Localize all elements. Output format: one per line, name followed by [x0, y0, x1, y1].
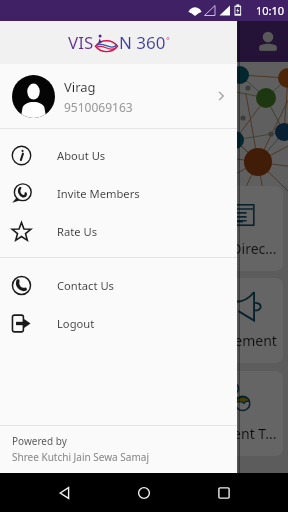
button[interactable]: Virag	[0, 64, 237, 128]
button[interactable]: Rate Us	[0, 212, 237, 250]
button[interactable]: Invite Members	[0, 174, 237, 212]
button[interactable]: Profile	[255, 29, 281, 55]
button[interactable]: Back	[50, 478, 80, 508]
staticText: N 360	[119, 31, 166, 54]
staticText: VIS	[68, 31, 94, 54]
staticText: Shree Kutchi Jain Sewa Samaj	[12, 450, 149, 464]
button[interactable]: Logout	[0, 304, 237, 342]
button[interactable]: Recents	[209, 478, 239, 508]
button[interactable]: Home	[129, 478, 159, 508]
staticText: About Us	[57, 148, 106, 163]
staticText: 10:10	[256, 3, 285, 18]
staticText: °	[166, 34, 170, 46]
button[interactable]: Open profile	[213, 88, 229, 104]
staticText: Powered by	[12, 434, 67, 448]
staticText: Invite Members	[57, 186, 140, 201]
button[interactable]: Contact Us	[0, 266, 237, 304]
staticText: s Direc...	[221, 239, 277, 258]
staticText: icement	[224, 331, 277, 350]
staticText: Rate Us	[57, 224, 98, 239]
staticText: Virag	[64, 78, 96, 96]
staticText: 9510069163	[64, 99, 133, 115]
button[interactable]: s Direc...	[5, 186, 283, 271]
button[interactable]: About Us	[0, 136, 237, 174]
button[interactable]: icement	[5, 278, 283, 363]
staticText: Logout	[57, 316, 95, 331]
button[interactable]: ment T...	[5, 371, 283, 456]
staticText: Contact Us	[57, 278, 114, 293]
staticText: ment T...	[220, 424, 277, 443]
